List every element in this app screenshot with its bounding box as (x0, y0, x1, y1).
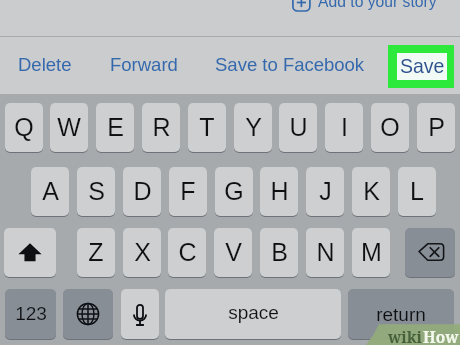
button[interactable]: O (371, 103, 409, 152)
staticText: S (88, 177, 105, 205)
staticText: K (363, 177, 380, 205)
staticText: Save to Facebook (215, 54, 365, 75)
staticText: O (380, 113, 400, 141)
staticText: U (289, 113, 308, 141)
button[interactable]: N (306, 228, 344, 277)
button[interactable]: 123 (5, 289, 56, 339)
button[interactable]: L (398, 167, 436, 216)
button[interactable]: space (165, 289, 341, 339)
staticText: Delete (18, 54, 72, 75)
staticText: E (107, 113, 124, 141)
staticText: I (341, 113, 348, 141)
button[interactable]: T (188, 103, 226, 152)
button[interactable]: R (142, 103, 180, 152)
button[interactable]: Q (5, 103, 43, 152)
button[interactable]: Y (234, 103, 272, 152)
staticText: How (423, 326, 459, 345)
staticText: wiki (388, 326, 423, 345)
staticText: space (228, 302, 279, 323)
button[interactable]: Delete (18, 51, 72, 77)
staticText: D (133, 177, 152, 205)
staticText: Q (14, 113, 34, 141)
button[interactable]: W (50, 103, 88, 152)
staticText: 123 (15, 303, 47, 324)
staticText: Forward (110, 54, 178, 75)
button[interactable]: V (214, 228, 252, 277)
staticText: return (376, 304, 426, 325)
button[interactable]: C (168, 228, 206, 277)
staticText: H (270, 177, 289, 205)
button[interactable]: Change keyboard (63, 289, 113, 339)
staticText: Y (245, 113, 262, 141)
button[interactable]: Forward (110, 51, 178, 77)
button[interactable]: Z (77, 228, 115, 277)
staticText: L (410, 177, 424, 205)
staticText: F (180, 177, 196, 205)
staticText: V (225, 238, 242, 266)
button[interactable]: Save to Facebook (215, 51, 365, 77)
button[interactable]: A (31, 167, 69, 216)
staticText: R (152, 113, 171, 141)
staticText: W (57, 113, 81, 141)
button[interactable]: D (123, 167, 161, 216)
staticText: Save (400, 55, 445, 77)
staticText: C (178, 238, 197, 266)
staticText: Add to your story (318, 0, 437, 11)
button[interactable]: G (215, 167, 253, 216)
staticText: B (271, 238, 288, 266)
button[interactable]: J (306, 167, 344, 216)
button[interactable]: S (77, 167, 115, 216)
button[interactable]: Dictate (121, 289, 159, 339)
button[interactable]: P (417, 103, 455, 152)
staticText: G (224, 177, 244, 205)
button[interactable]: K (352, 167, 390, 216)
button[interactable]: return (348, 289, 454, 339)
button[interactable]: Add to your story (292, 0, 442, 16)
staticText: A (42, 177, 59, 205)
staticText: P (428, 113, 445, 141)
button[interactable]: X (123, 228, 161, 277)
staticText: Z (88, 238, 104, 266)
staticText: T (199, 113, 215, 141)
staticText: M (361, 238, 382, 266)
staticText: N (316, 238, 335, 266)
button[interactable]: I (325, 103, 363, 152)
button[interactable]: U (279, 103, 317, 152)
button[interactable]: H (260, 167, 298, 216)
button[interactable]: Save (397, 53, 447, 80)
button[interactable]: F (169, 167, 207, 216)
button[interactable]: Shift (4, 228, 56, 277)
staticText: X (134, 238, 151, 266)
staticText: J (319, 177, 332, 205)
button[interactable]: B (260, 228, 298, 277)
button[interactable]: M (352, 228, 390, 277)
button[interactable]: Backspace (405, 228, 455, 277)
button[interactable]: E (96, 103, 134, 152)
